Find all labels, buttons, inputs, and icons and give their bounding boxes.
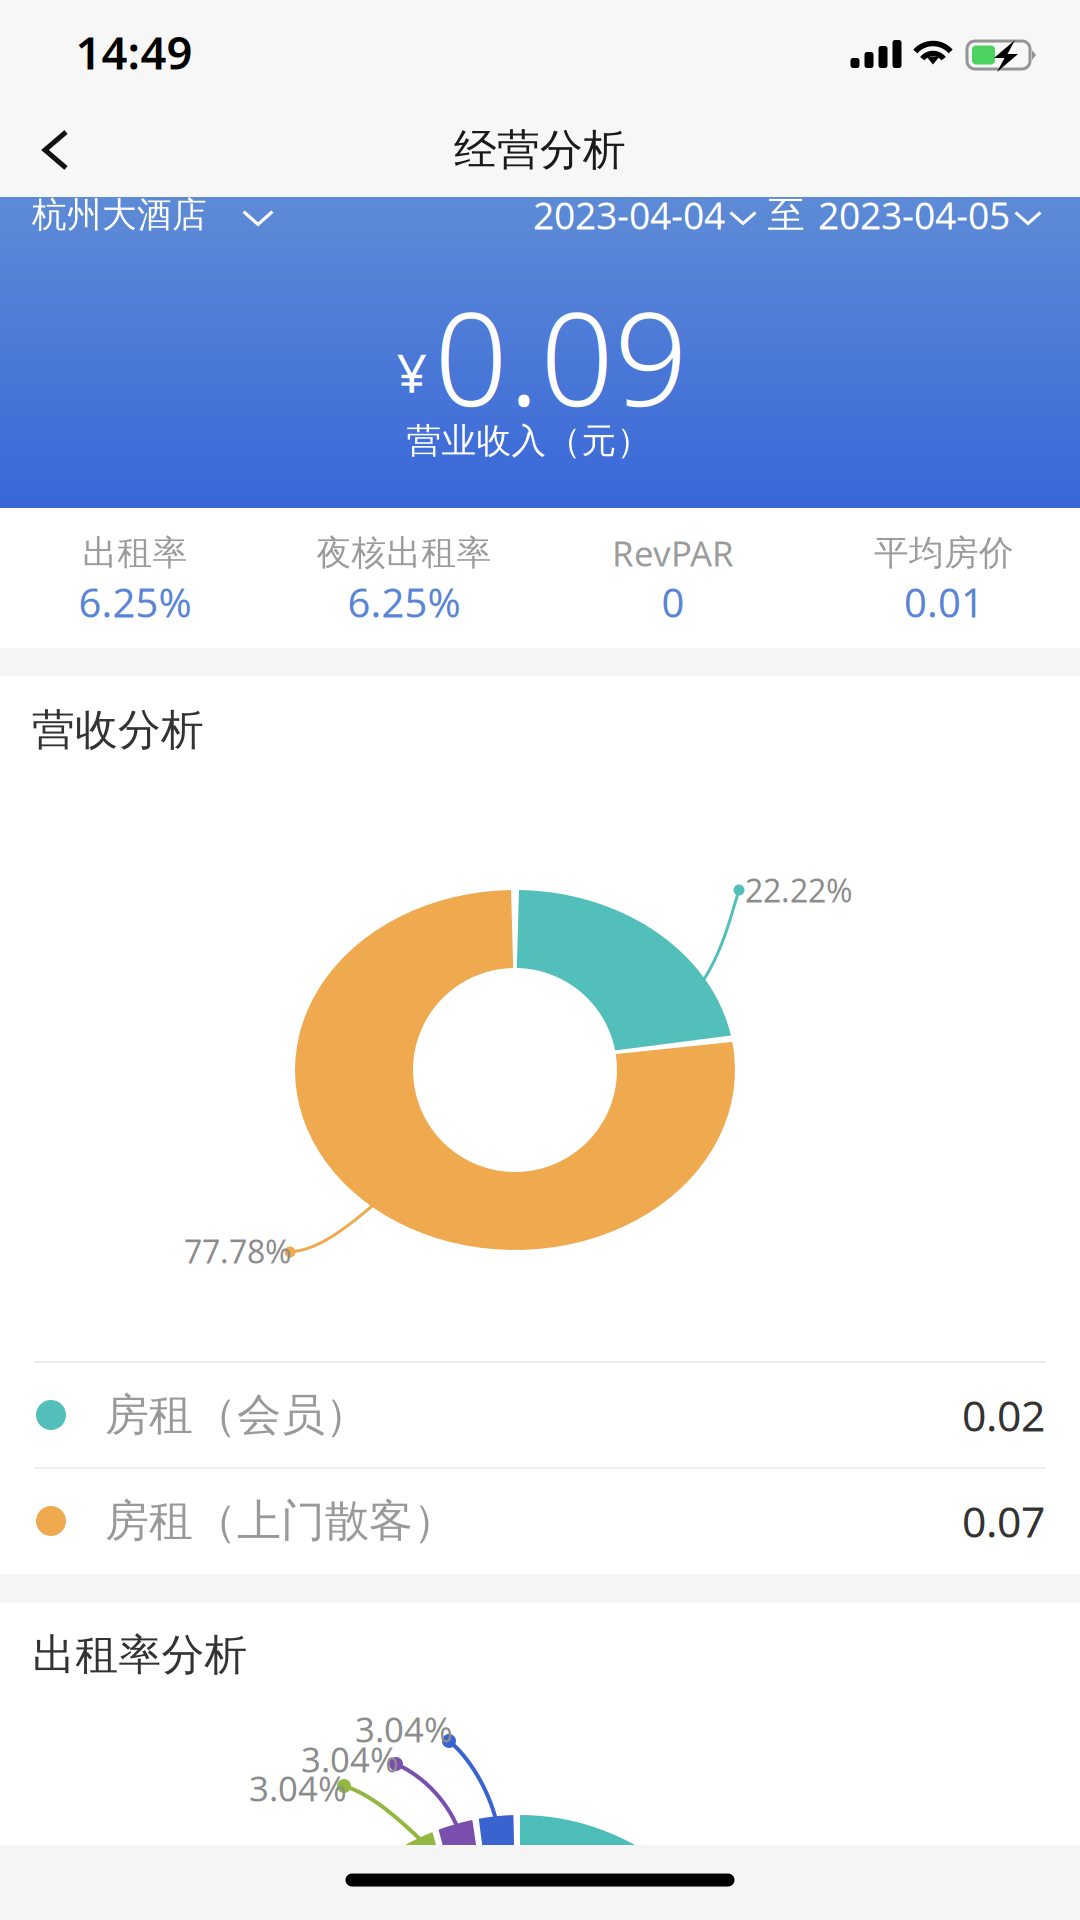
staticText: 至 [767,192,804,238]
staticText: 平均房价 [874,532,1014,574]
button[interactable]: 2023-04-04 [525,178,765,252]
staticText: 房租（会员） [105,1388,369,1442]
staticText: 14:49 [75,22,192,82]
staticText: 出租率分析 [32,1629,247,1681]
staticText: 夜核出租率 [316,532,491,574]
staticText: 经营分析 [454,124,626,176]
button[interactable]: 杭州大酒店 [16,182,290,248]
staticText: 22.22% [745,869,853,911]
staticText: 3.04% [355,1706,453,1752]
staticText: 0 [661,575,684,628]
staticText: ¥ [396,337,427,407]
staticText: 3.04% [301,1736,399,1782]
staticText: 杭州大酒店 [32,194,207,236]
staticText: 6.25% [347,575,460,628]
staticText: 77.78% [184,1230,292,1272]
staticText: 3.04% [249,1765,347,1811]
staticText: 0.07 [962,1493,1045,1549]
staticText: 房租（上门散客） [105,1494,457,1548]
staticText: RevPAR [612,530,734,576]
staticText: 6.25% [78,575,191,628]
staticText: 2023-04-04 [533,190,725,240]
staticText: 0.02 [962,1387,1045,1443]
button[interactable]: Back [0,99,130,201]
button[interactable]: 2023-04-05 [810,178,1050,252]
staticText: 2023-04-05 [818,190,1010,240]
staticText: 0.01 [904,575,984,628]
staticText: 出租率 [82,532,187,574]
button[interactable]: 房租（上门散客） [0,1468,1080,1574]
staticText: 营业收入（元） [406,420,651,462]
staticText: 营收分析 [32,704,204,756]
staticText: 0.09 [434,270,688,442]
button[interactable]: 房租（会员） [0,1362,1080,1468]
